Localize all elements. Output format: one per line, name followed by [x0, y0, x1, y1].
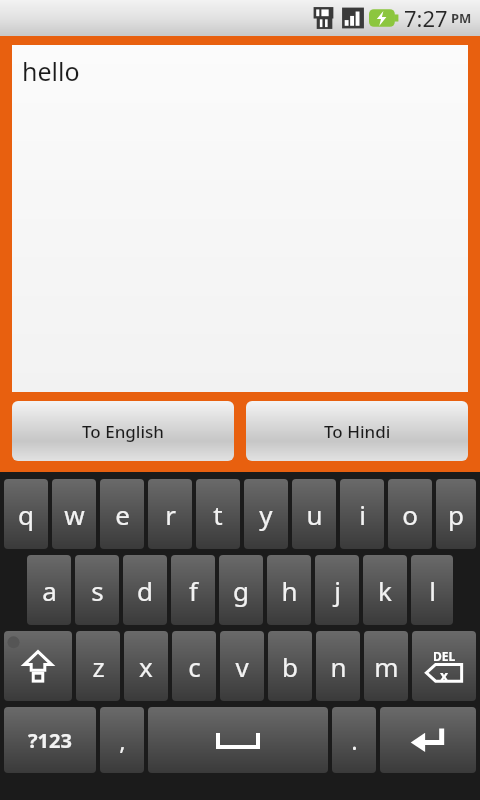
button[interactable]: ,	[100, 707, 144, 773]
staticText: m	[374, 649, 399, 684]
button[interactable]: t	[196, 479, 240, 549]
staticText: c	[188, 649, 201, 684]
button[interactable]: To Hindi	[246, 401, 468, 461]
button[interactable]: v	[220, 631, 264, 701]
staticText: p	[448, 497, 464, 532]
button[interactable]: Delete	[412, 631, 476, 701]
button[interactable]: m	[364, 631, 408, 701]
button[interactable]: i	[340, 479, 384, 549]
staticText: h	[281, 573, 298, 608]
button[interactable]: Space	[148, 707, 328, 773]
staticText: To English	[82, 420, 164, 443]
staticText: w	[64, 497, 85, 532]
button[interactable]: f	[171, 555, 215, 625]
button[interactable]: n	[316, 631, 360, 701]
button[interactable]: q	[4, 479, 48, 549]
button[interactable]: o	[388, 479, 432, 549]
staticText: j	[334, 573, 341, 608]
button[interactable]: r	[148, 479, 192, 549]
staticText: r	[165, 497, 176, 532]
button[interactable]: g	[219, 555, 263, 625]
button[interactable]: a	[27, 555, 71, 625]
staticText: t	[213, 497, 223, 532]
button[interactable]: ?123	[4, 707, 96, 773]
button[interactable]: j	[315, 555, 359, 625]
staticText: n	[330, 649, 347, 684]
staticText: DEL	[433, 648, 456, 664]
button[interactable]: y	[244, 479, 288, 549]
button[interactable]: x	[124, 631, 168, 701]
button[interactable]: h	[267, 555, 311, 625]
staticText: a	[42, 573, 57, 608]
button[interactable]: z	[76, 631, 120, 701]
staticText: y	[259, 497, 273, 532]
button[interactable]: b	[268, 631, 312, 701]
button[interactable]: l	[411, 555, 453, 625]
staticText: x	[440, 666, 449, 685]
staticText: 7:27	[404, 3, 448, 33]
button[interactable]: w	[52, 479, 96, 549]
staticText: f	[189, 573, 198, 608]
button[interactable]: To English	[12, 401, 234, 461]
staticText: b	[282, 649, 298, 684]
staticText: d	[137, 573, 153, 608]
staticText: e	[115, 497, 130, 532]
button[interactable]: e	[100, 479, 144, 549]
staticText: o	[402, 497, 418, 532]
staticText: z	[92, 649, 105, 684]
staticText: l	[429, 573, 436, 608]
staticText: ,	[119, 724, 126, 757]
button[interactable]: hello	[12, 45, 468, 392]
button[interactable]: k	[363, 555, 407, 625]
staticText: i	[359, 497, 366, 532]
staticText: g	[233, 573, 249, 608]
staticText: v	[235, 649, 249, 684]
button[interactable]: d	[123, 555, 167, 625]
button[interactable]: Enter	[380, 707, 476, 773]
staticText: To Hindi	[324, 420, 391, 443]
button[interactable]: Shift	[4, 631, 72, 701]
staticText: k	[378, 573, 392, 608]
staticText: PM	[451, 9, 472, 27]
staticText: u	[306, 497, 323, 532]
button[interactable]: p	[436, 479, 476, 549]
button[interactable]: s	[75, 555, 119, 625]
staticText: hello	[22, 54, 80, 88]
staticText: ?123	[28, 727, 72, 754]
button[interactable]: c	[172, 631, 216, 701]
staticText: .	[351, 724, 358, 757]
button[interactable]: .	[332, 707, 376, 773]
button[interactable]: u	[292, 479, 336, 549]
staticText: s	[91, 573, 104, 608]
staticText: x	[139, 649, 153, 684]
staticText: q	[18, 497, 34, 532]
